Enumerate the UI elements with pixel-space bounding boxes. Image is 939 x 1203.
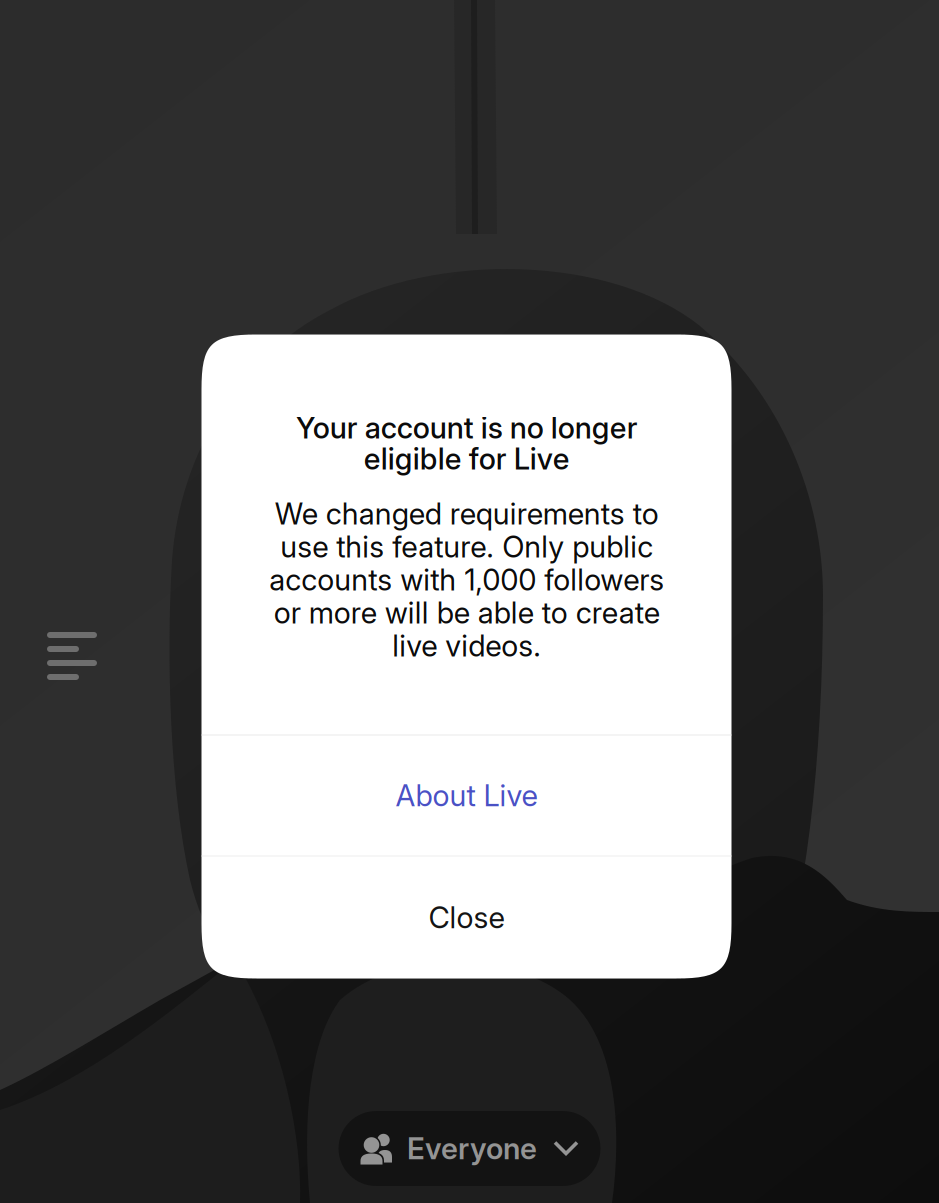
button[interactable]: About Live <box>201 735 731 855</box>
staticText: Your account is no longer eligible for L… <box>295 412 637 474</box>
staticText: Close <box>428 900 504 935</box>
staticText: About Live <box>395 778 537 813</box>
staticText: We changed requirements to use this feat… <box>269 497 664 662</box>
button[interactable]: Everyone <box>338 1111 600 1186</box>
button[interactable]: Close <box>201 856 731 978</box>
staticText: Everyone <box>407 1131 537 1166</box>
button[interactable]: Caption <box>47 631 97 681</box>
